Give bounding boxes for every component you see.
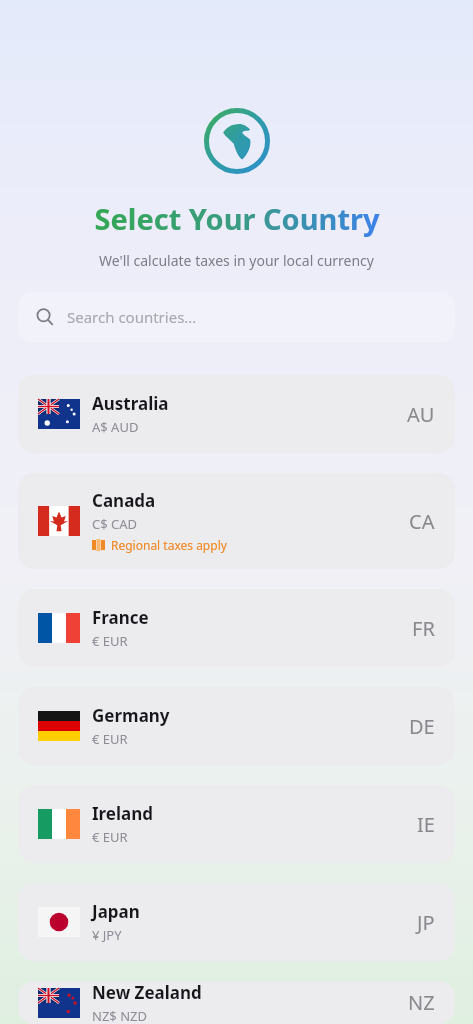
- staticText: Select Your Country: [94, 199, 380, 238]
- button[interactable]: Germany: [18, 687, 455, 765]
- staticText: We'll calculate taxes in your local curr…: [99, 251, 374, 270]
- staticText: Japan: [92, 900, 140, 923]
- staticText: Australia: [92, 392, 169, 415]
- staticText: Regional taxes apply: [111, 537, 227, 553]
- staticText: € EUR: [92, 828, 128, 846]
- staticText: IE: [417, 811, 435, 838]
- staticText: New Zealand: [92, 981, 202, 1004]
- button[interactable]: New Zealand: [18, 981, 455, 1024]
- staticText: DE: [409, 713, 435, 740]
- staticText: FR: [412, 615, 435, 642]
- button[interactable]: Canada: [18, 473, 455, 569]
- button[interactable]: Ireland: [18, 785, 455, 863]
- staticText: Search countries...: [67, 307, 197, 327]
- staticText: AU: [407, 401, 435, 428]
- staticText: € EUR: [92, 730, 128, 748]
- staticText: NZ$ NZD: [92, 1007, 147, 1024]
- button[interactable]: France: [18, 589, 455, 667]
- other: Search: [36, 308, 54, 326]
- button[interactable]: Australia: [18, 375, 455, 453]
- staticText: JP: [417, 909, 435, 936]
- staticText: Germany: [92, 704, 170, 727]
- staticText: € EUR: [92, 632, 128, 650]
- other: Globe: [204, 108, 270, 174]
- staticText: France: [92, 606, 149, 629]
- button[interactable]: Search: [18, 292, 455, 342]
- staticText: ¥ JPY: [92, 926, 122, 944]
- staticText: C$ CAD: [92, 515, 138, 533]
- staticText: Canada: [92, 489, 156, 512]
- staticText: Ireland: [92, 802, 154, 825]
- staticText: NZ: [408, 989, 435, 1016]
- staticText: CA: [409, 508, 435, 535]
- button[interactable]: Japan: [18, 883, 455, 961]
- staticText: A$ AUD: [92, 418, 139, 436]
